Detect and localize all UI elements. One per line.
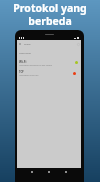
button[interactable]: Home bbox=[47, 170, 51, 174]
button[interactable]: Back bbox=[30, 170, 34, 174]
staticText: Hubungkan ke IOT lain bbox=[19, 74, 39, 76]
button[interactable]: Open navigation menu bbox=[18, 42, 22, 46]
button[interactable]: Wi-Fi bbox=[17, 58, 81, 68]
staticText: Setup bbox=[24, 42, 31, 45]
staticText: Hubungkan perangkat IOT dan kamera bbox=[19, 64, 53, 66]
button[interactable]: Recent apps bbox=[64, 170, 68, 174]
button[interactable]: TCP bbox=[17, 68, 81, 78]
staticText: TCP bbox=[19, 70, 24, 74]
staticText: Protokol yang berbeda bbox=[0, 1, 100, 28]
button[interactable]: More options bbox=[76, 42, 80, 46]
staticText: Mode Koneksi bbox=[19, 52, 31, 54]
staticText: Wi-Fi bbox=[19, 60, 27, 64]
